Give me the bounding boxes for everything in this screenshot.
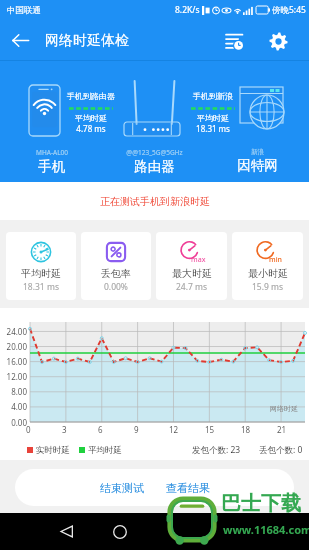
button[interactable]: History	[214, 21, 254, 61]
staticText: 15	[205, 424, 215, 435]
button[interactable]: Back	[0, 20, 41, 61]
staticText: 12.00	[0, 371, 27, 382]
staticText: max	[191, 255, 206, 265]
staticText: 20.00	[0, 341, 27, 352]
staticText: 丢包个数: 0	[259, 444, 303, 456]
button[interactable]: 查看结果	[157, 473, 219, 503]
staticText: 24.00	[0, 326, 27, 337]
staticText: 18.31 ms	[196, 123, 230, 134]
staticText: MHA-AL00	[36, 148, 68, 157]
staticText: 丢包率	[101, 267, 131, 280]
staticText: 24.7 ms	[176, 281, 208, 293]
staticText: 实时时延	[36, 445, 70, 456]
button[interactable]: Recents	[154, 513, 194, 550]
button[interactable]: max	[156, 232, 227, 300]
staticText: 最小时延	[248, 267, 288, 280]
staticText: 傍晚5:45	[272, 4, 306, 16]
staticText: 网络时延体检	[45, 32, 129, 50]
staticText: 平均时延	[88, 445, 122, 456]
staticText: 4.78 ms	[76, 123, 106, 134]
staticText: 0.00%	[104, 281, 128, 293]
staticText: 手机到新浪	[193, 91, 233, 101]
staticText: 18	[241, 424, 251, 435]
staticText: 正在测试手机到新浪时延	[100, 195, 210, 208]
staticText: 9	[134, 424, 139, 435]
staticText: 平均时延	[75, 113, 107, 123]
button[interactable]: min	[232, 232, 303, 300]
button[interactable]: 丢包率	[81, 232, 151, 300]
staticText: 6	[98, 424, 103, 435]
staticText: 21	[277, 424, 287, 435]
staticText: 3	[62, 424, 67, 435]
staticText: 中国联通	[7, 5, 41, 16]
staticText: www.11684.com	[223, 522, 309, 537]
staticText: 手机	[38, 158, 65, 175]
staticText: 0	[26, 424, 31, 435]
staticText: 16.00	[0, 356, 27, 367]
staticText: 结束测试	[100, 481, 144, 495]
button[interactable]: Back	[46, 513, 86, 550]
staticText: 查看结果	[166, 481, 210, 495]
staticText: 因特网	[237, 157, 278, 174]
staticText: 15.9 ms	[252, 281, 284, 293]
staticText: 最大时延	[172, 267, 212, 280]
button[interactable]: 结束测试	[91, 473, 153, 503]
staticText: 0.00	[0, 417, 27, 428]
staticText: 4.00	[0, 401, 27, 412]
staticText: 18.31 ms	[23, 281, 59, 293]
button[interactable]: Home	[100, 513, 140, 550]
staticText: min	[269, 255, 282, 265]
staticText: 8.2K/s	[175, 4, 200, 16]
staticText: 路由器	[134, 158, 175, 175]
staticText: 网络时延	[270, 404, 298, 413]
staticText: 12	[169, 424, 179, 435]
staticText: 发包个数: 23	[192, 444, 241, 456]
button[interactable]: 平均时延	[6, 232, 76, 300]
staticText: 手机到路由器	[67, 91, 115, 101]
staticText: 新浪	[251, 148, 264, 156]
staticText: @@123_5G@5GHz	[126, 148, 183, 157]
staticText: 平均时延	[197, 113, 229, 123]
staticText: 巴士下载	[221, 491, 301, 516]
staticText: 平均时延	[21, 267, 61, 280]
button[interactable]: Settings	[258, 21, 298, 61]
staticText: 8.00	[0, 386, 27, 397]
